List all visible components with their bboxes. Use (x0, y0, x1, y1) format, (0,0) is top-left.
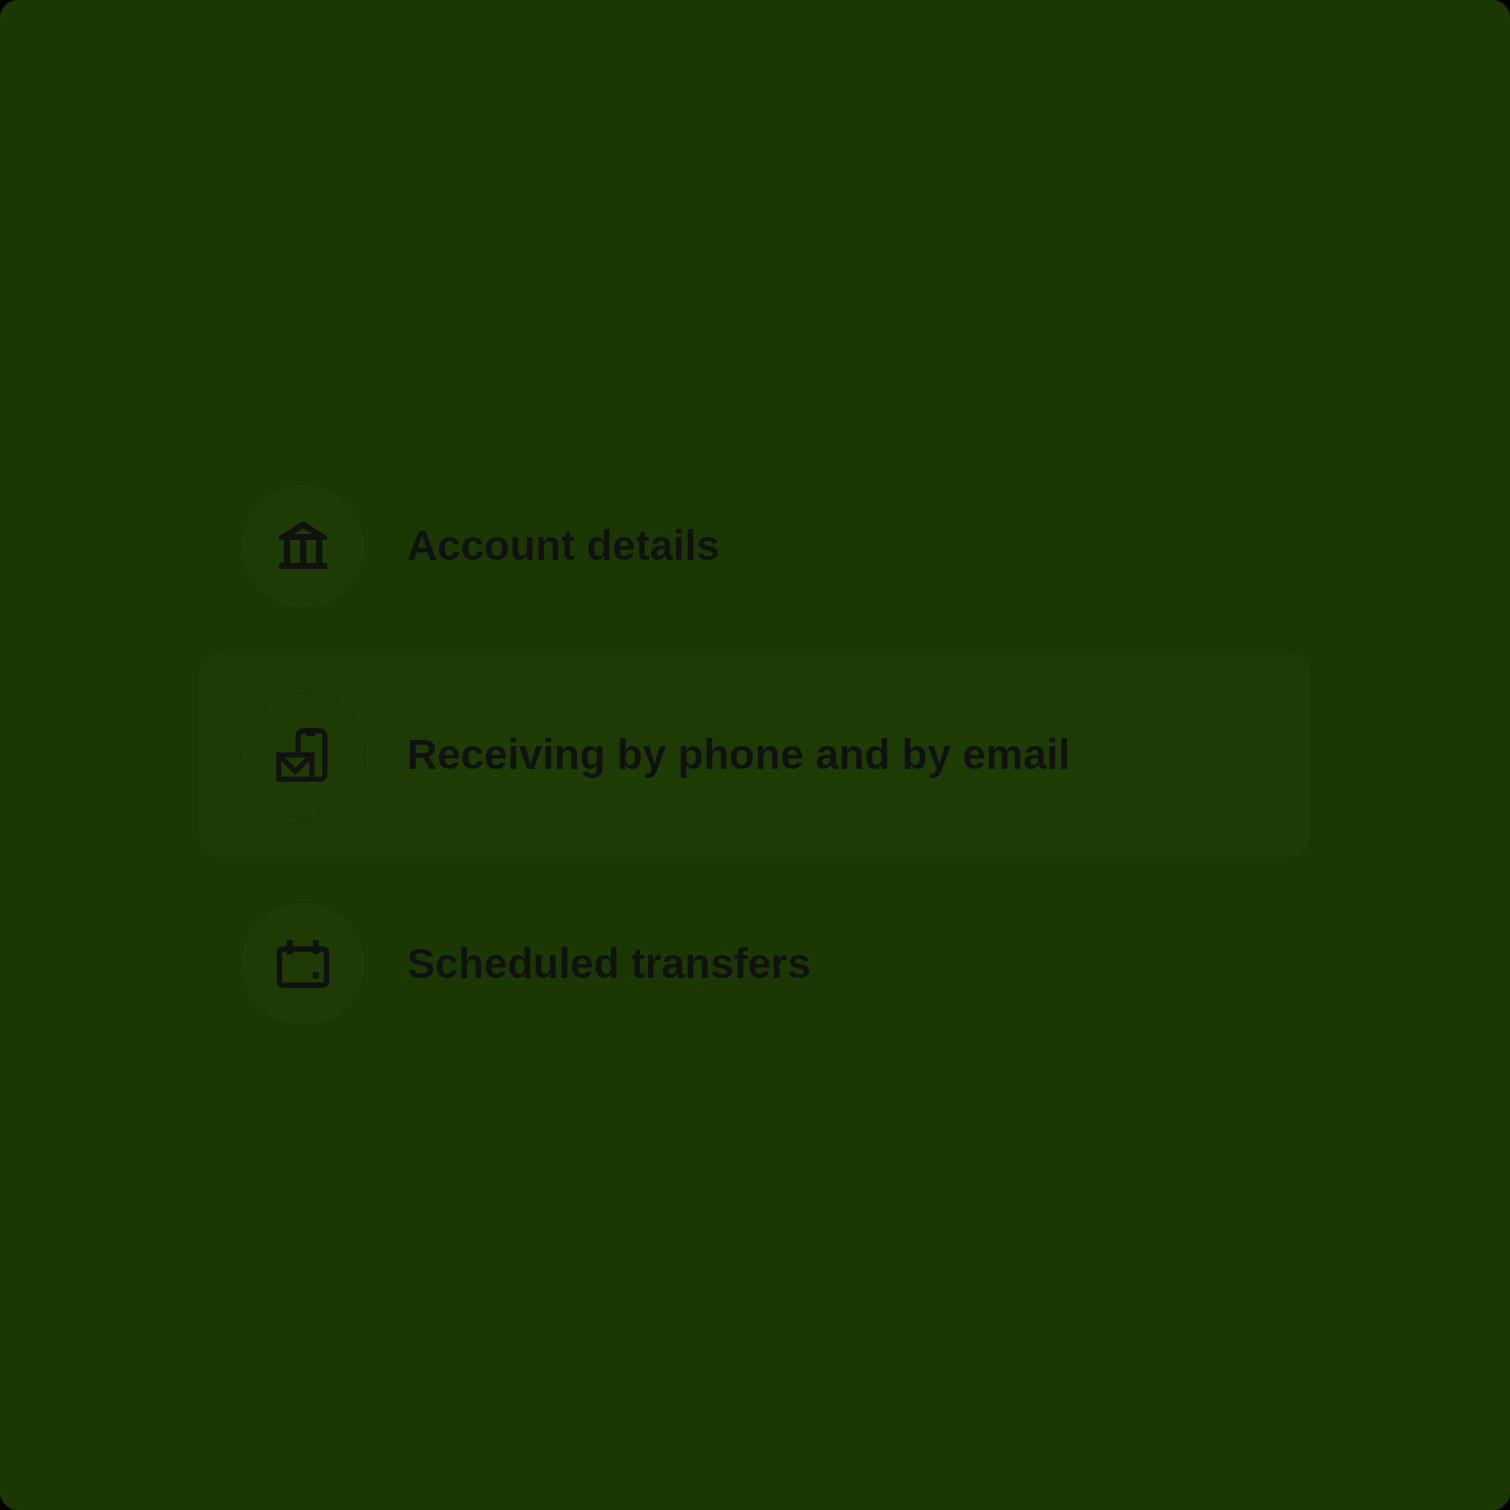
button[interactable]: Scheduled transfers (198, 860, 1311, 1068)
other: Receiving by phone and by email (275, 727, 331, 783)
staticText: Scheduled transfers (407, 940, 811, 987)
other: Account details (275, 518, 331, 574)
button[interactable]: Receiving by phone and by email (198, 651, 1311, 859)
other: Scheduled transfers (275, 936, 331, 992)
staticText: Account details (407, 522, 720, 569)
button[interactable]: Account details (198, 442, 1311, 650)
staticText: Receiving by phone and by email (407, 731, 1070, 778)
